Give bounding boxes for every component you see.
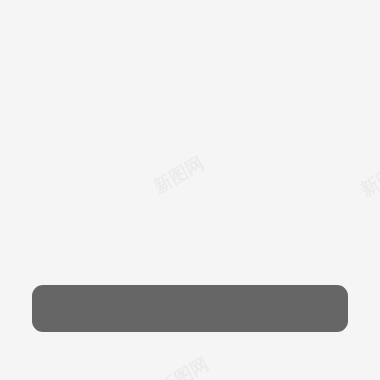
staticText: 新图网 [357,155,380,202]
staticText: 新图网 [155,353,213,380]
button[interactable]: Bar [32,285,348,332]
staticText: 新图网 [150,152,208,199]
